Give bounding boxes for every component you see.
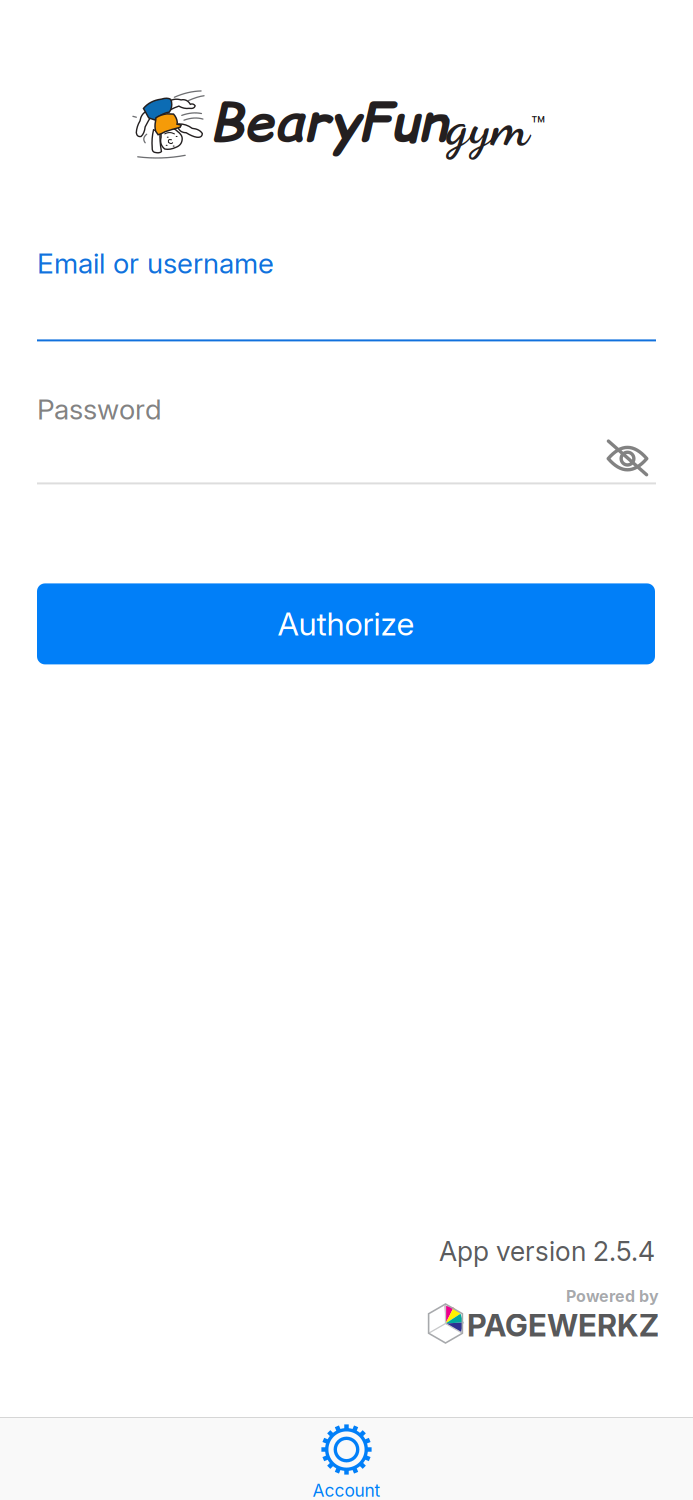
- staticText: Authorize: [277, 604, 414, 643]
- staticText: Email or username: [37, 246, 274, 280]
- button[interactable]: Authorize: [37, 583, 655, 664]
- staticText: Account: [312, 1480, 380, 1500]
- staticText: PAGEWERKZ: [467, 1307, 659, 1344]
- button[interactable]: Account: [0, 1418, 693, 1500]
- staticText: gym: [447, 92, 529, 159]
- button[interactable]: Show password: [599, 432, 656, 483]
- staticText: Password: [37, 392, 162, 426]
- staticText: BearyFun: [210, 85, 447, 159]
- staticText: Powered by: [566, 1286, 659, 1306]
- staticText: App version 2.5.4: [439, 1235, 655, 1268]
- staticText: ™: [531, 110, 545, 139]
